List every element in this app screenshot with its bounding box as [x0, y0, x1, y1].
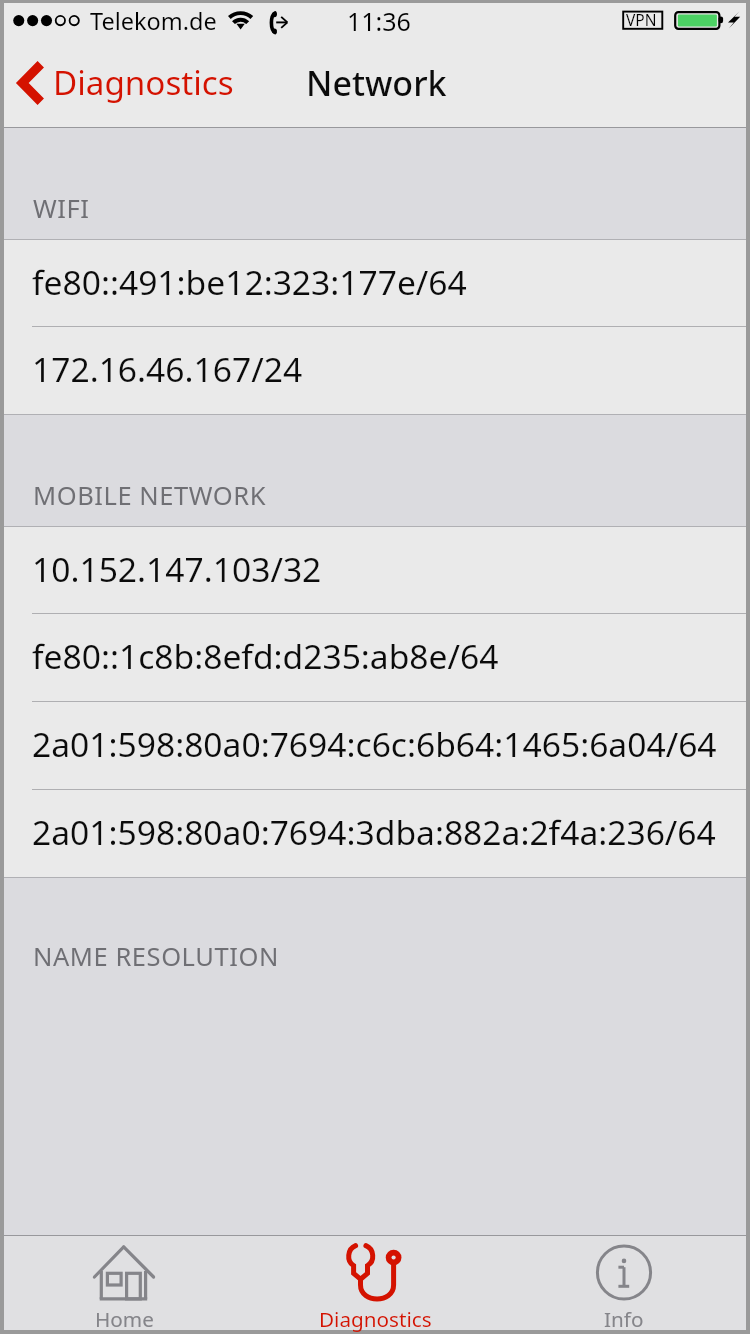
staticText: Diagnostics: [319, 1305, 432, 1333]
button[interactable]: Diagnostics: [4, 58, 244, 107]
staticText: Info: [604, 1305, 644, 1333]
button[interactable]: 10.152.147.103/32: [4, 527, 746, 614]
button[interactable]: fe80::1c8b:8efd:d235:ab8e/64: [4, 614, 746, 702]
staticText: Network: [306, 60, 447, 106]
staticText: Home: [95, 1305, 154, 1333]
button[interactable]: Diagnostics: [313, 1236, 437, 1330]
staticText: Diagnostics: [53, 60, 234, 105]
staticText: VPN: [626, 9, 657, 30]
staticText: 11:36: [347, 4, 411, 38]
staticText: 2a01:598:80a0:7694:3dba:882a:2f4a:236/64: [32, 809, 716, 855]
button[interactable]: 2a01:598:80a0:7694:c6c:6b64:1465:6a04/64: [4, 702, 746, 790]
button[interactable]: 2a01:598:80a0:7694:3dba:882a:2f4a:236/64: [4, 790, 746, 877]
staticText: 10.152.147.103/32: [32, 546, 322, 592]
staticText: Telekom.de: [90, 5, 217, 37]
staticText: WIFI: [33, 191, 90, 226]
staticText: MOBILE NETWORK: [33, 478, 267, 513]
button[interactable]: Home: [62, 1236, 186, 1330]
staticText: fe80::1c8b:8efd:d235:ab8e/64: [32, 633, 499, 679]
staticText: 172.16.46.167/24: [32, 346, 303, 392]
staticText: NAME RESOLUTION: [33, 939, 279, 974]
button[interactable]: fe80::491:be12:323:177e/64: [4, 240, 746, 327]
button[interactable]: Info: [562, 1236, 686, 1330]
staticText: fe80::491:be12:323:177e/64: [32, 259, 467, 305]
staticText: 2a01:598:80a0:7694:c6c:6b64:1465:6a04/64: [32, 721, 717, 767]
button[interactable]: 172.16.46.167/24: [4, 327, 746, 414]
